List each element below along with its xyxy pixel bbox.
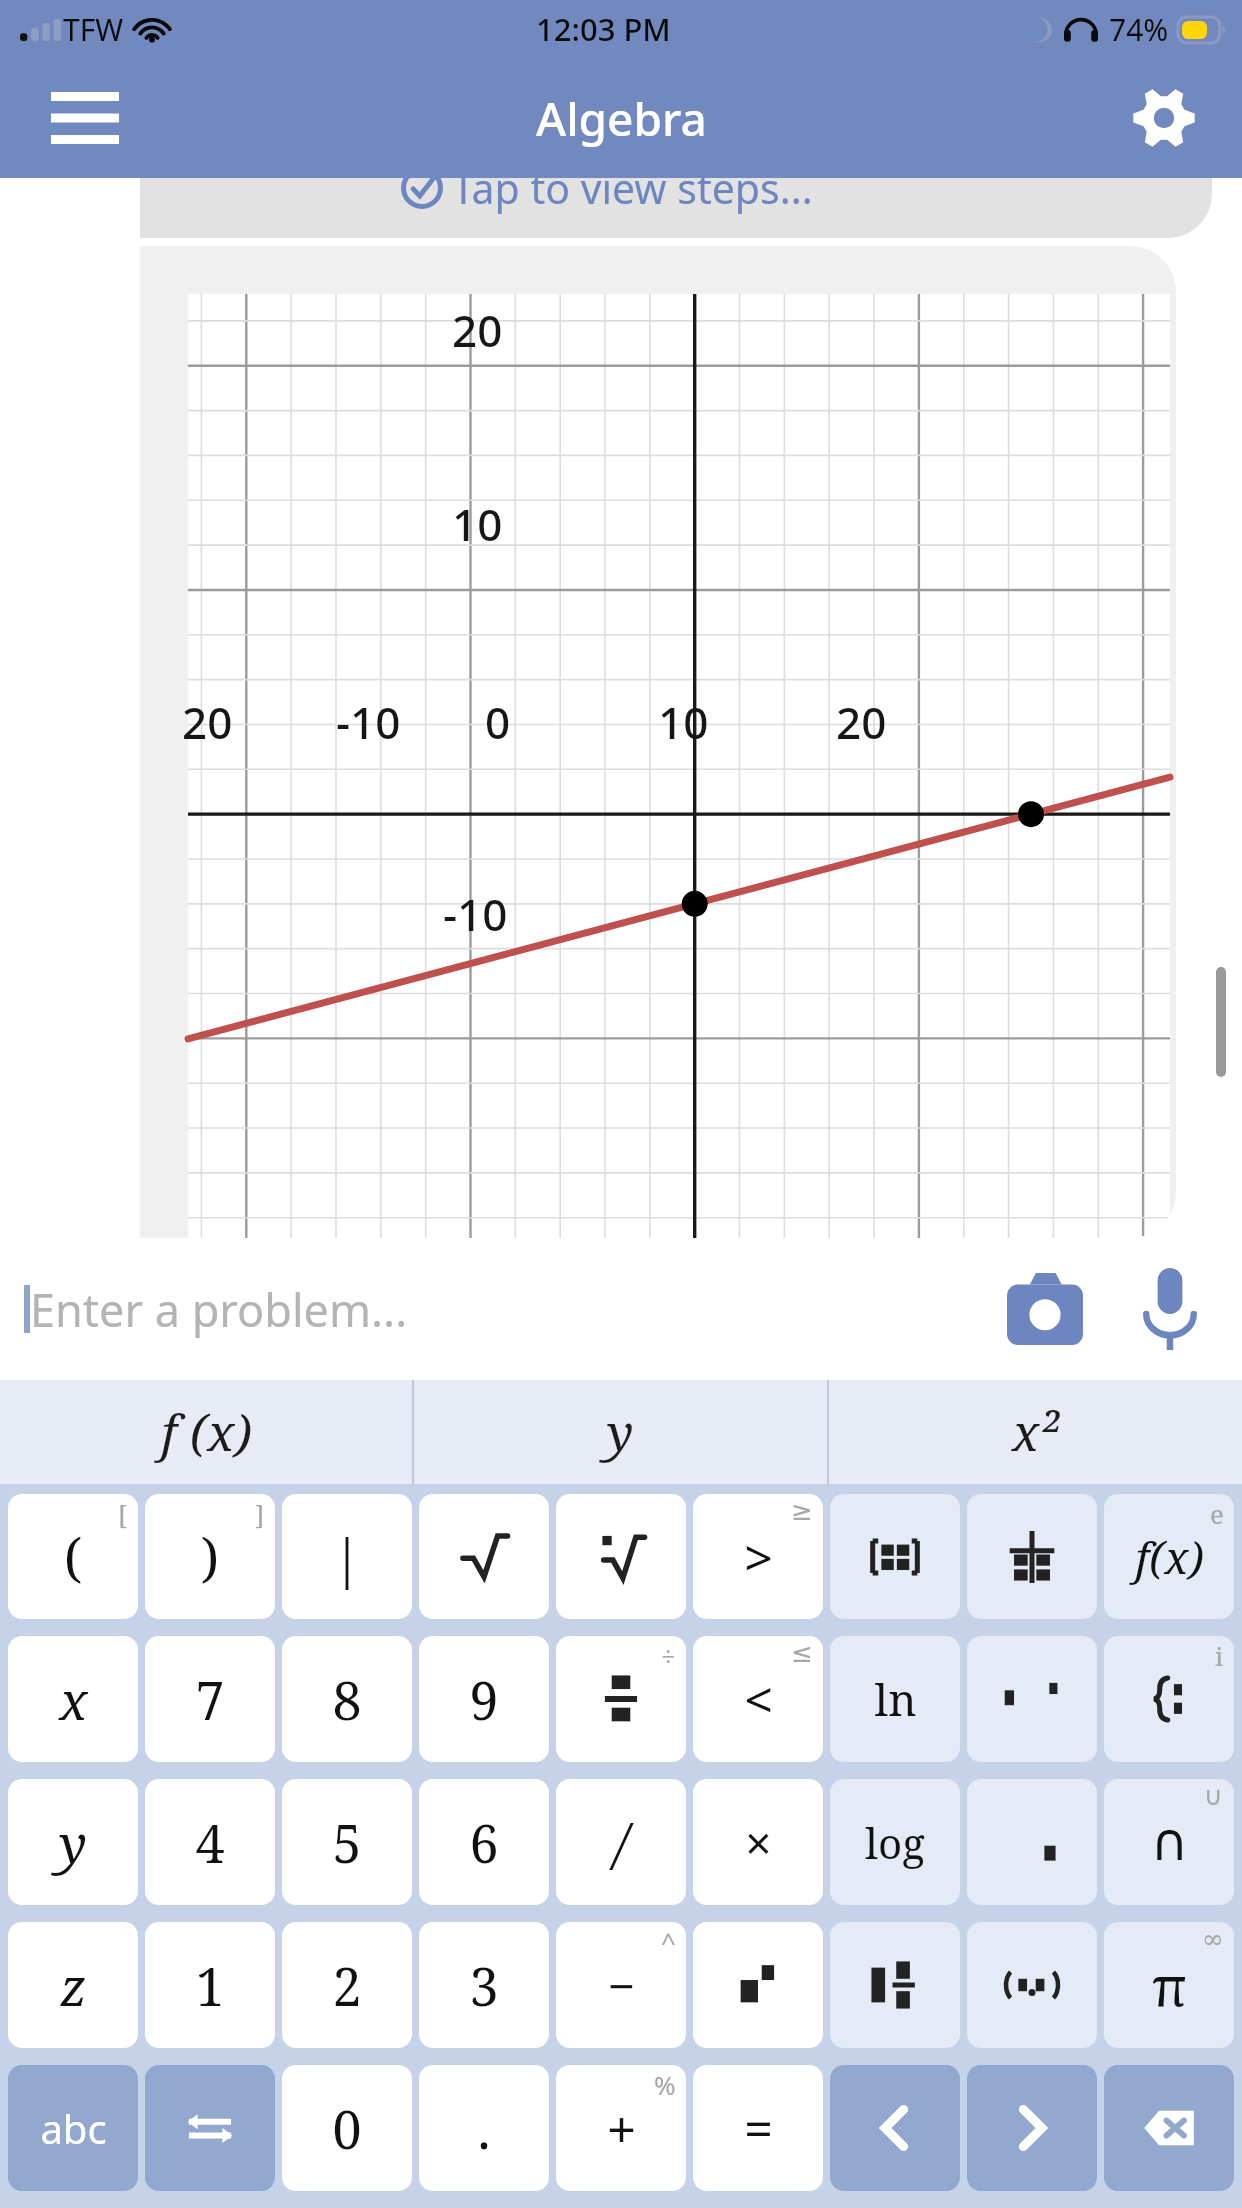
staticText: / [614, 1807, 629, 1878]
button[interactable]: log [830, 1779, 960, 1905]
button[interactable]: x [8, 1636, 138, 1762]
staticText: 0 [485, 692, 511, 752]
staticText: ÷ [661, 1638, 676, 1673]
button[interactable]: Backspace [1104, 2065, 1234, 2191]
button[interactable]: × [693, 1779, 823, 1905]
button[interactable]: Move left [830, 2065, 960, 2191]
staticText: < [744, 1665, 773, 1733]
staticText: ^ [661, 1924, 676, 1959]
button[interactable]: ∞ [1104, 1922, 1234, 2048]
staticText: TFW [63, 9, 124, 50]
button[interactable]: Tap to view steps... [140, 178, 1212, 238]
button[interactable]: e [1104, 1494, 1234, 1619]
button[interactable]: 9 [419, 1636, 549, 1762]
button[interactable]: y [414, 1380, 827, 1484]
staticText: 10 [452, 494, 503, 554]
button[interactable]: 7 [145, 1636, 275, 1762]
button[interactable]: x² [829, 1380, 1242, 1484]
button[interactable]: Fraction [556, 1636, 686, 1762]
staticText: ∞ [1202, 1924, 1224, 1954]
button[interactable]: = [693, 2065, 823, 2191]
button[interactable]: Matrix [830, 1494, 960, 1619]
staticText: − [608, 1954, 635, 2017]
staticText: x [59, 1664, 88, 1735]
staticText: Enter a problem... [30, 1279, 408, 1340]
button[interactable]: % [556, 2065, 686, 2191]
button[interactable]: Square root [419, 1494, 549, 1619]
staticText: 6 [469, 1807, 499, 1878]
button[interactable]: z [8, 1922, 138, 2048]
button[interactable]: [ [8, 1494, 138, 1619]
staticText: % [654, 2067, 676, 2102]
button[interactable]: 6 [419, 1779, 549, 1905]
button[interactable]: Scientific notation [967, 1636, 1097, 1762]
button[interactable]: . [419, 2065, 549, 2191]
staticText: 5 [332, 1807, 362, 1878]
button[interactable]: f (x) [0, 1380, 412, 1484]
staticText: f (x) [161, 1398, 252, 1466]
button[interactable]: | [282, 1494, 412, 1619]
staticText: + [607, 2094, 636, 2162]
button[interactable]: 8 [282, 1636, 412, 1762]
staticText: 8 [332, 1664, 362, 1735]
staticText: 1 [195, 1950, 225, 2021]
button[interactable]: ∪ [1104, 1779, 1234, 1905]
button[interactable]: 1 [145, 1922, 275, 2048]
staticText: y [607, 1398, 634, 1466]
staticText: y [59, 1807, 87, 1878]
staticText: ) [201, 1521, 219, 1592]
button[interactable]: y [8, 1779, 138, 1905]
staticText: ≥ [791, 1496, 813, 1526]
button[interactable]: Log base [967, 1779, 1097, 1905]
button[interactable]: ] [145, 1494, 275, 1619]
staticText: ≤ [791, 1638, 813, 1668]
staticText: abc [40, 2101, 107, 2155]
button[interactable]: 5 [282, 1779, 412, 1905]
button[interactable]: Move right [967, 2065, 1097, 2191]
staticText: e [1210, 1496, 1224, 1531]
button[interactable]: ≥ [693, 1494, 823, 1619]
staticText: Tap to view steps... [452, 178, 813, 216]
staticText: 20 [182, 692, 233, 752]
staticText: 0 [332, 2093, 362, 2164]
staticText: x² [1012, 1398, 1060, 1466]
button[interactable]: 0 [282, 2065, 412, 2191]
staticText: > [744, 1523, 773, 1591]
button[interactable]: Exponent [693, 1922, 823, 2048]
staticText: ∪ [1204, 1781, 1224, 1811]
staticText: -10 [443, 884, 508, 944]
button[interactable]: 20 [140, 246, 1176, 1238]
button[interactable]: 2 [282, 1922, 412, 2048]
button[interactable]: Piecewise [1104, 1636, 1234, 1762]
button[interactable]: Nth root [556, 1494, 686, 1619]
staticText: | [332, 1521, 362, 1592]
staticText: -10 [336, 692, 401, 752]
button[interactable]: Switch keyboard [145, 2065, 275, 2191]
staticText: ( [64, 1521, 82, 1592]
button[interactable]: Ordered pair [967, 1922, 1097, 2048]
staticText: 10 [658, 692, 709, 752]
button[interactable]: ≤ [693, 1636, 823, 1762]
staticText: ln [874, 1669, 917, 1729]
staticText: ] [255, 1496, 265, 1531]
staticText: 9 [469, 1664, 499, 1735]
staticText: log [865, 1814, 925, 1871]
button[interactable]: Settings [1118, 72, 1210, 164]
button[interactable]: Mixed number [830, 1922, 960, 2048]
button[interactable]: abc [8, 2065, 138, 2191]
staticText: × [745, 1811, 772, 1874]
button[interactable]: Scan with camera [990, 1261, 1100, 1357]
staticText: π [1152, 1948, 1187, 2022]
button[interactable]: Voice input [1122, 1261, 1218, 1357]
button[interactable]: / [556, 1779, 686, 1905]
button[interactable]: 4 [145, 1779, 275, 1905]
button[interactable]: Menu [40, 83, 130, 153]
button[interactable]: 3 [419, 1922, 549, 2048]
staticText: f(x) [1135, 1527, 1204, 1587]
staticText: i [1215, 1638, 1224, 1673]
button[interactable]: System [967, 1494, 1097, 1619]
staticText: 7 [195, 1664, 225, 1735]
staticText: = [744, 2094, 773, 2162]
button[interactable]: ^ [556, 1922, 686, 2048]
button[interactable]: ln [830, 1636, 960, 1762]
